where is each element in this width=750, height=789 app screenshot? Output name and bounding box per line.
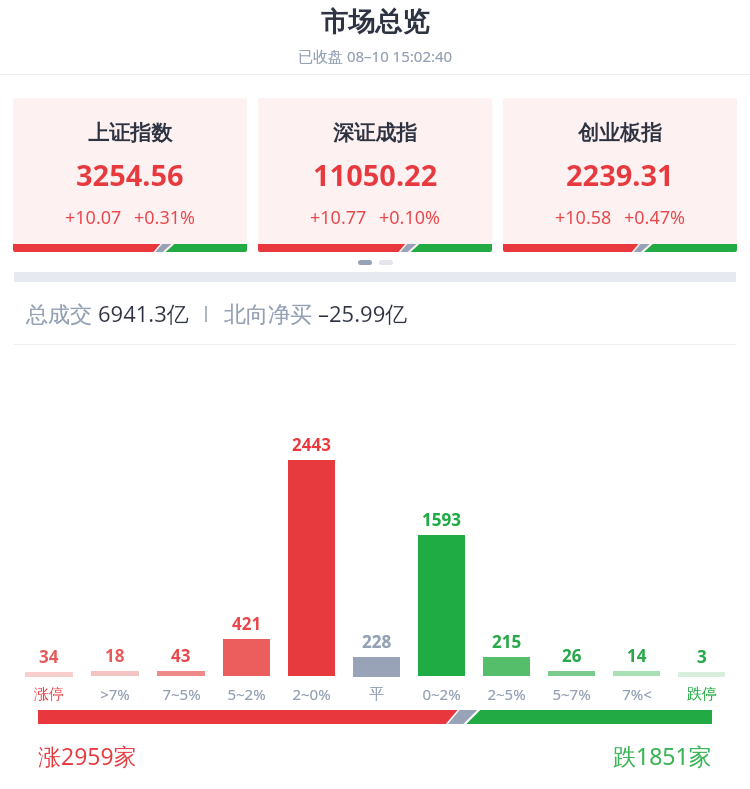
staticText: 5~7% — [552, 684, 591, 704]
button[interactable]: 2443 — [279, 345, 344, 704]
staticText: 43 — [171, 644, 191, 667]
button[interactable]: 1593 — [409, 345, 474, 704]
staticText: 总成交 — [26, 298, 98, 328]
staticText: 跌停 — [687, 685, 717, 704]
staticText: 2239.31 — [566, 155, 674, 194]
staticText: 深证成指 — [333, 120, 417, 146]
staticText: 26 — [562, 644, 582, 667]
button[interactable]: 深证成指 — [258, 98, 492, 252]
staticText: 0~2% — [422, 684, 461, 704]
staticText: 平 — [369, 685, 384, 704]
button[interactable]: 34 — [16, 345, 82, 704]
staticText: 涨2959家 — [38, 740, 137, 771]
staticText: 14 — [627, 644, 647, 667]
button[interactable]: 43 — [148, 345, 214, 704]
staticText: 5~2% — [227, 684, 266, 704]
button[interactable]: 创业板指 — [503, 98, 737, 252]
staticText: 跌1851家 — [613, 740, 712, 771]
staticText: >7% — [100, 684, 130, 704]
button[interactable] — [38, 710, 712, 724]
staticText: 3 — [697, 645, 707, 668]
staticText: 丨 — [189, 302, 224, 325]
staticText: 34 — [39, 645, 59, 668]
button[interactable]: 上证指数 — [13, 98, 247, 252]
staticText: +10.58 — [555, 205, 612, 230]
staticText: 2~0% — [292, 684, 331, 704]
button[interactable]: 421 — [214, 345, 279, 704]
button[interactable]: 228 — [344, 345, 409, 704]
staticText: 11050.22 — [313, 155, 438, 194]
staticText: 市场总览 — [321, 5, 429, 39]
button[interactable]: 18 — [82, 345, 148, 704]
staticText: +0.10% — [379, 205, 440, 230]
staticText: 6941.3亿 — [98, 298, 189, 328]
button[interactable]: 26 — [539, 345, 604, 704]
staticText: +0.31% — [134, 205, 195, 230]
staticText: +10.07 — [65, 205, 122, 230]
staticText: –25.99亿 — [318, 298, 408, 328]
staticText: 创业板指 — [578, 120, 662, 146]
staticText: 7%< — [622, 684, 652, 704]
staticText: 421 — [232, 612, 262, 635]
staticText: 1593 — [422, 508, 461, 531]
button[interactable]: 14 — [604, 345, 669, 704]
staticText: 2~5% — [487, 684, 526, 704]
staticText: 上证指数 — [88, 120, 172, 146]
staticText: 18 — [105, 644, 125, 667]
button[interactable]: 215 — [474, 345, 539, 704]
staticText: 228 — [362, 630, 392, 653]
button[interactable]: 总成交 — [0, 282, 750, 344]
staticText: +10.77 — [310, 205, 367, 230]
staticText: +0.47% — [624, 205, 685, 230]
staticText: 已收盘 08–10 15:02:40 — [298, 46, 453, 66]
staticText: 涨停 — [34, 685, 64, 704]
button[interactable]: 3 — [669, 345, 734, 704]
staticText: 2443 — [292, 433, 331, 456]
staticText: 北向净买 — [224, 298, 318, 328]
staticText: 3254.56 — [76, 155, 184, 194]
staticText: 7~5% — [162, 684, 201, 704]
staticText: 215 — [492, 630, 522, 653]
